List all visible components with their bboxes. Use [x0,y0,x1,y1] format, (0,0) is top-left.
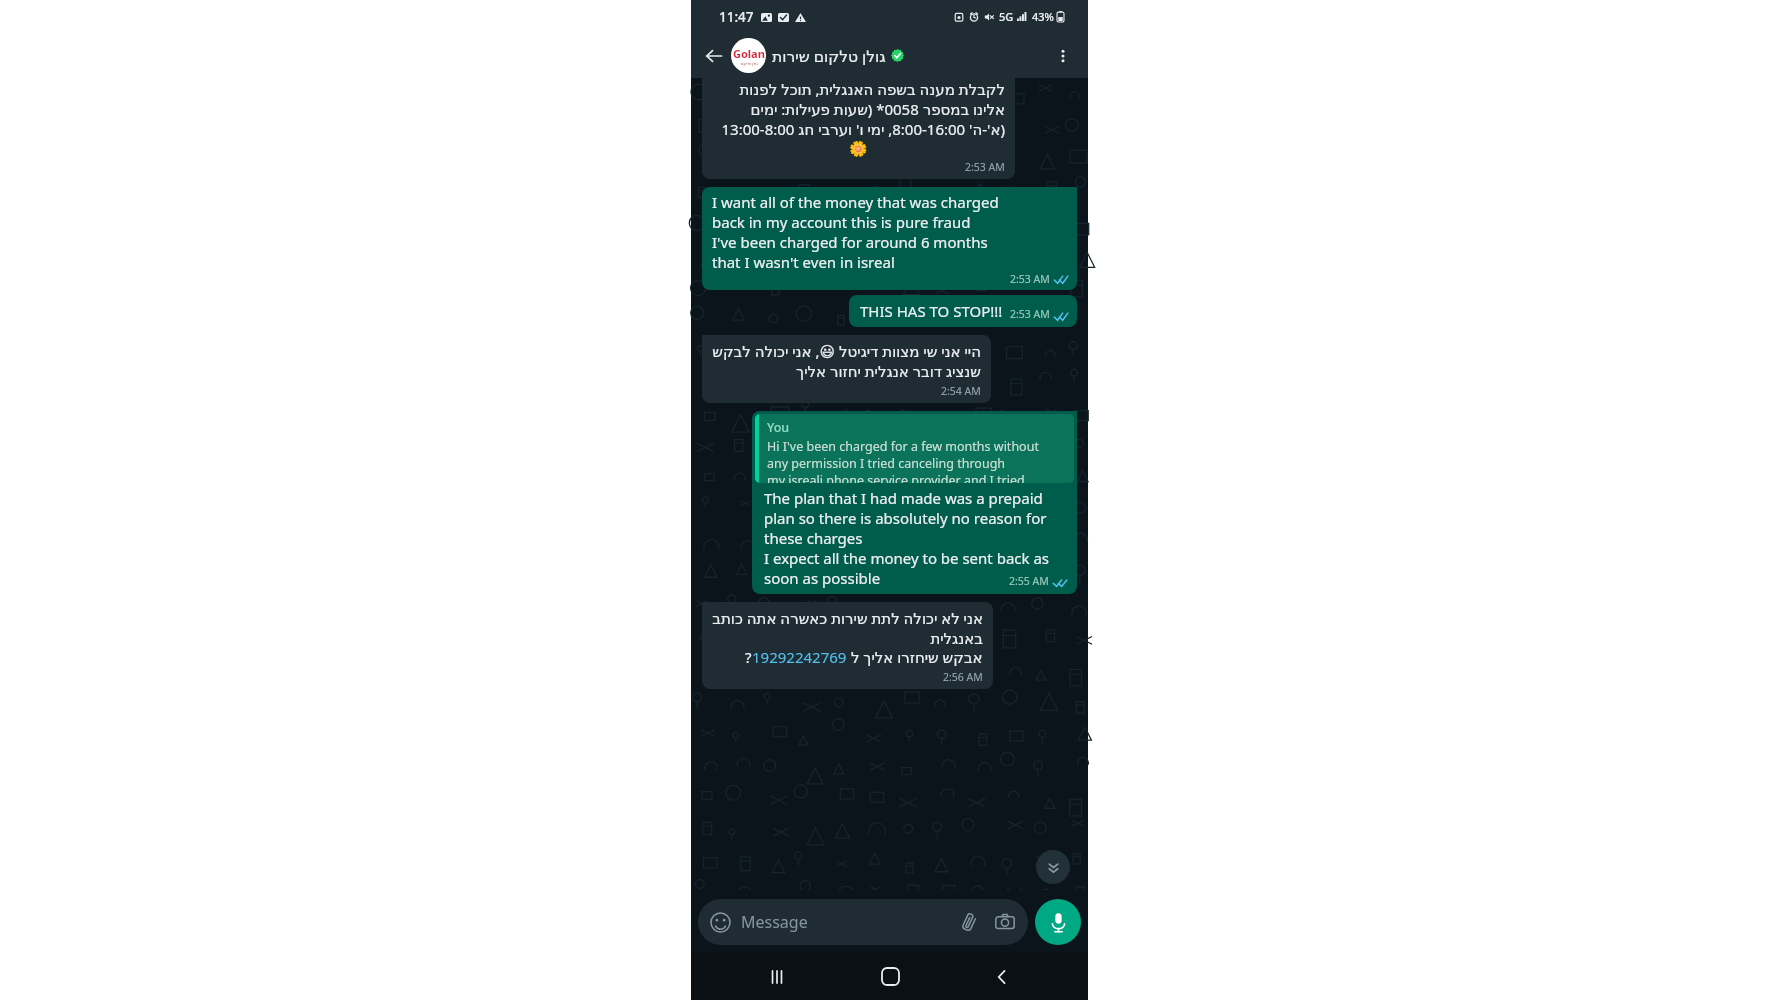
staticText: 2:53 AM [965,160,1005,174]
button[interactable]: Emoji [698,899,1028,945]
staticText: that I wasn't even in isreal [712,252,895,272]
staticText: גולן טלקום [741,61,758,66]
staticText: Message [741,911,808,933]
staticText: I've been charged for around 6 months [712,232,988,252]
staticText: 🌼 [849,140,868,158]
button[interactable]: I want all of the money that was charged [702,187,1077,290]
button[interactable]: More options [1048,41,1078,71]
staticText: לקבלת מענה בשפה האנגלית, תוכל לפנות אלינ… [721,79,1005,139]
staticText: plan so there is absolutely no reason fo… [764,508,1047,528]
staticText: soon as possible [764,568,881,588]
button[interactable]: אני לא יכולה לתת שירות כאשרה אתה כותב בא… [702,602,993,689]
button[interactable]: היי אני שי מצוות דיגיטל 😃, אני יכולה לבק… [702,335,991,403]
button[interactable]: Record voice message [1035,899,1081,945]
staticText: my isreali phone service provider and I … [767,472,1038,483]
staticText: 2:56 AM [943,670,983,684]
staticText: 2:55 AM [1009,574,1049,588]
button[interactable]: Attach [957,910,981,934]
button[interactable]: Golan [729,33,1048,78]
button[interactable]: Emoji [709,911,732,934]
staticText: The plan that I had made was a prepaid [764,488,1043,508]
staticText: any permission I tried canceling through [767,455,1006,472]
staticText: 43% [1032,9,1054,24]
button[interactable]: Recent apps [751,953,803,1000]
staticText: ? [745,647,752,667]
staticText: 19292242769 [752,647,847,667]
staticText: אני לא יכולה לתת שירות כאשרה אתה כותב בא… [712,608,983,647]
staticText: 2:54 AM [941,384,981,398]
button[interactable]: Home [864,953,916,1000]
button[interactable]: לקבלת מענה בשפה האנגלית, תוכל לפנות אלינ… [702,78,1015,179]
staticText: היי אני שי מצוות דיגיטל 😃, אני יכולה לבק… [712,341,981,381]
staticText: גולן טלקום שירות [772,45,886,66]
staticText: 2:53 AM [1010,272,1050,286]
staticText: Hi I've been charged for a few months wi… [767,438,1039,455]
staticText: THIS HAS TO STOP!!! [860,301,1003,321]
button[interactable]: Scroll to bottom [1036,850,1070,884]
staticText: 5G [999,9,1014,24]
staticText: I want all of the money that was charged [712,192,999,212]
staticText: 2:53 AM [1010,307,1050,321]
staticText: I expect all the money to be sent back a… [764,548,1050,568]
button[interactable]: Back [699,41,729,71]
staticText: אבקש שיחזרו אליך ל [847,647,983,667]
button[interactable]: You [752,411,1077,594]
button[interactable]: Camera [993,910,1017,934]
staticText: You [767,419,790,436]
staticText: Golan [733,46,765,61]
button[interactable]: Back [976,953,1028,1000]
button[interactable]: THIS HAS TO STOP!!! [849,295,1077,327]
staticText: 11:47 [719,8,754,26]
staticText: back in my account this is pure fraud [712,212,971,232]
staticText: these charges [764,528,863,548]
